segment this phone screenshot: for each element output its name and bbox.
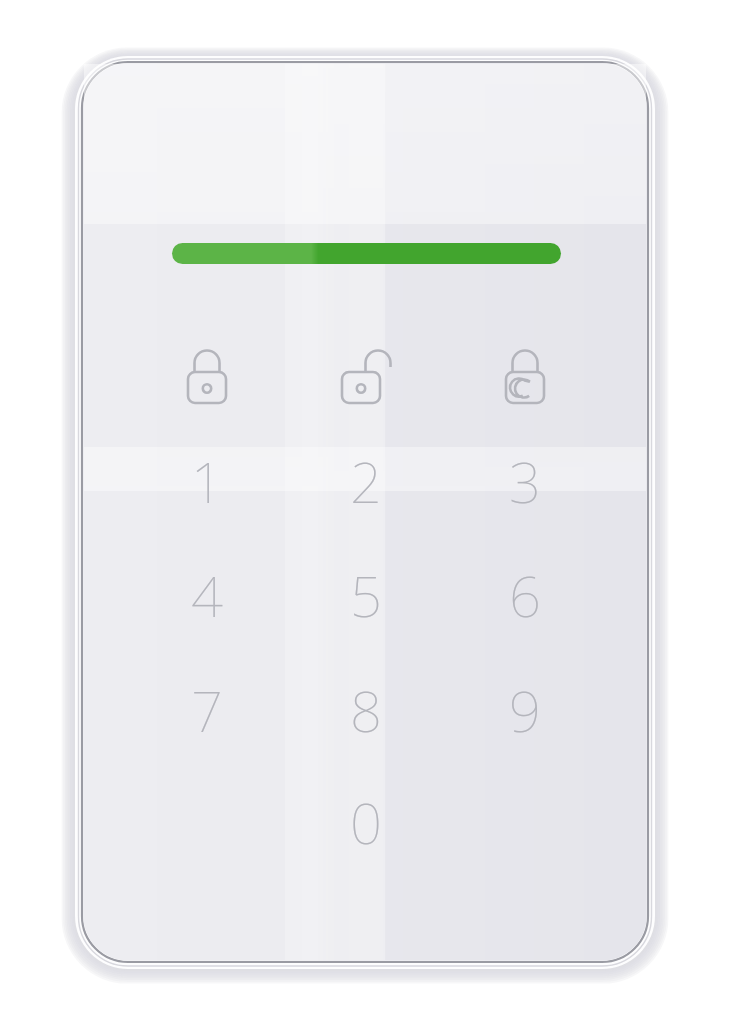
button[interactable]: 9 — [475, 665, 575, 755]
button[interactable]: Disarm — [330, 334, 402, 406]
staticText: 7 — [191, 672, 223, 748]
button[interactable]: 7 — [157, 665, 257, 755]
staticText: 6 — [509, 557, 541, 633]
button[interactable]: 2 — [316, 436, 416, 526]
button[interactable]: 5 — [316, 550, 416, 640]
staticText: 4 — [191, 557, 223, 633]
staticText: 8 — [350, 672, 382, 748]
staticText: 2 — [350, 443, 382, 519]
button[interactable]: Arm night — [489, 334, 561, 406]
staticText: 1 — [191, 443, 223, 519]
button[interactable]: 3 — [475, 436, 575, 526]
staticText: 3 — [509, 443, 541, 519]
button[interactable]: 8 — [316, 665, 416, 755]
button[interactable]: 6 — [475, 550, 575, 640]
button[interactable]: 4 — [157, 550, 257, 640]
staticText: 5 — [350, 557, 382, 633]
button[interactable]: 1 — [157, 436, 257, 526]
button[interactable]: Arm away — [171, 334, 243, 406]
staticText: 9 — [509, 672, 541, 748]
button[interactable]: 0 — [316, 777, 416, 867]
staticText: 0 — [350, 784, 382, 860]
